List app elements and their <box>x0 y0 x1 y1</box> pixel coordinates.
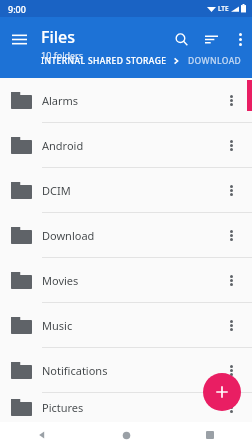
button[interactable]: DOWNLOAD <box>188 55 242 67</box>
button[interactable]: DCIM <box>0 168 252 212</box>
staticText: Android <box>42 138 84 153</box>
button[interactable]: Sort <box>196 24 226 54</box>
staticText: LTE <box>218 4 229 13</box>
button[interactable]: Home <box>84 422 168 448</box>
button[interactable]: Recent apps <box>168 422 252 448</box>
button[interactable]: Notifications <box>0 348 252 392</box>
staticText: DOWNLOAD <box>188 55 242 67</box>
button[interactable]: More options for Download <box>216 220 246 250</box>
staticText: Files <box>41 26 76 48</box>
staticText: INTERNAL SHARED STORAGE <box>41 55 167 67</box>
button[interactable]: Android <box>0 123 252 167</box>
staticText: Alarms <box>42 93 79 108</box>
button[interactable]: Music <box>0 303 252 347</box>
button[interactable]: Back <box>0 422 84 448</box>
button[interactable]: INTERNAL SHARED STORAGE <box>41 55 167 67</box>
button[interactable]: Movies <box>0 258 252 302</box>
staticText: 9:00 <box>8 3 26 15</box>
staticText: Music <box>42 318 73 333</box>
button[interactable]: More options for Music <box>216 310 246 340</box>
button[interactable]: Pictures <box>0 393 252 422</box>
button[interactable]: Download <box>0 213 252 257</box>
staticText: Pictures <box>42 400 84 415</box>
button[interactable]: Alarms <box>0 78 252 122</box>
staticText: DCIM <box>42 183 71 198</box>
staticText: Movies <box>42 273 79 288</box>
button[interactable]: More options for Android <box>216 130 246 160</box>
button[interactable]: Search <box>166 24 196 54</box>
button[interactable]: More options for Notifications <box>216 355 246 385</box>
button[interactable]: Navigation menu <box>4 24 34 54</box>
staticText: Notifications <box>42 363 108 378</box>
button[interactable]: More options for Alarms <box>216 85 246 115</box>
staticText: 10 folders <box>41 49 84 61</box>
button[interactable]: More options <box>226 25 252 53</box>
button[interactable]: More options for Pictures <box>216 393 246 422</box>
button[interactable]: More options for Movies <box>216 265 246 295</box>
staticText: Download <box>42 228 95 243</box>
button[interactable]: More options for DCIM <box>216 175 246 205</box>
button[interactable]: Add <box>203 373 241 411</box>
